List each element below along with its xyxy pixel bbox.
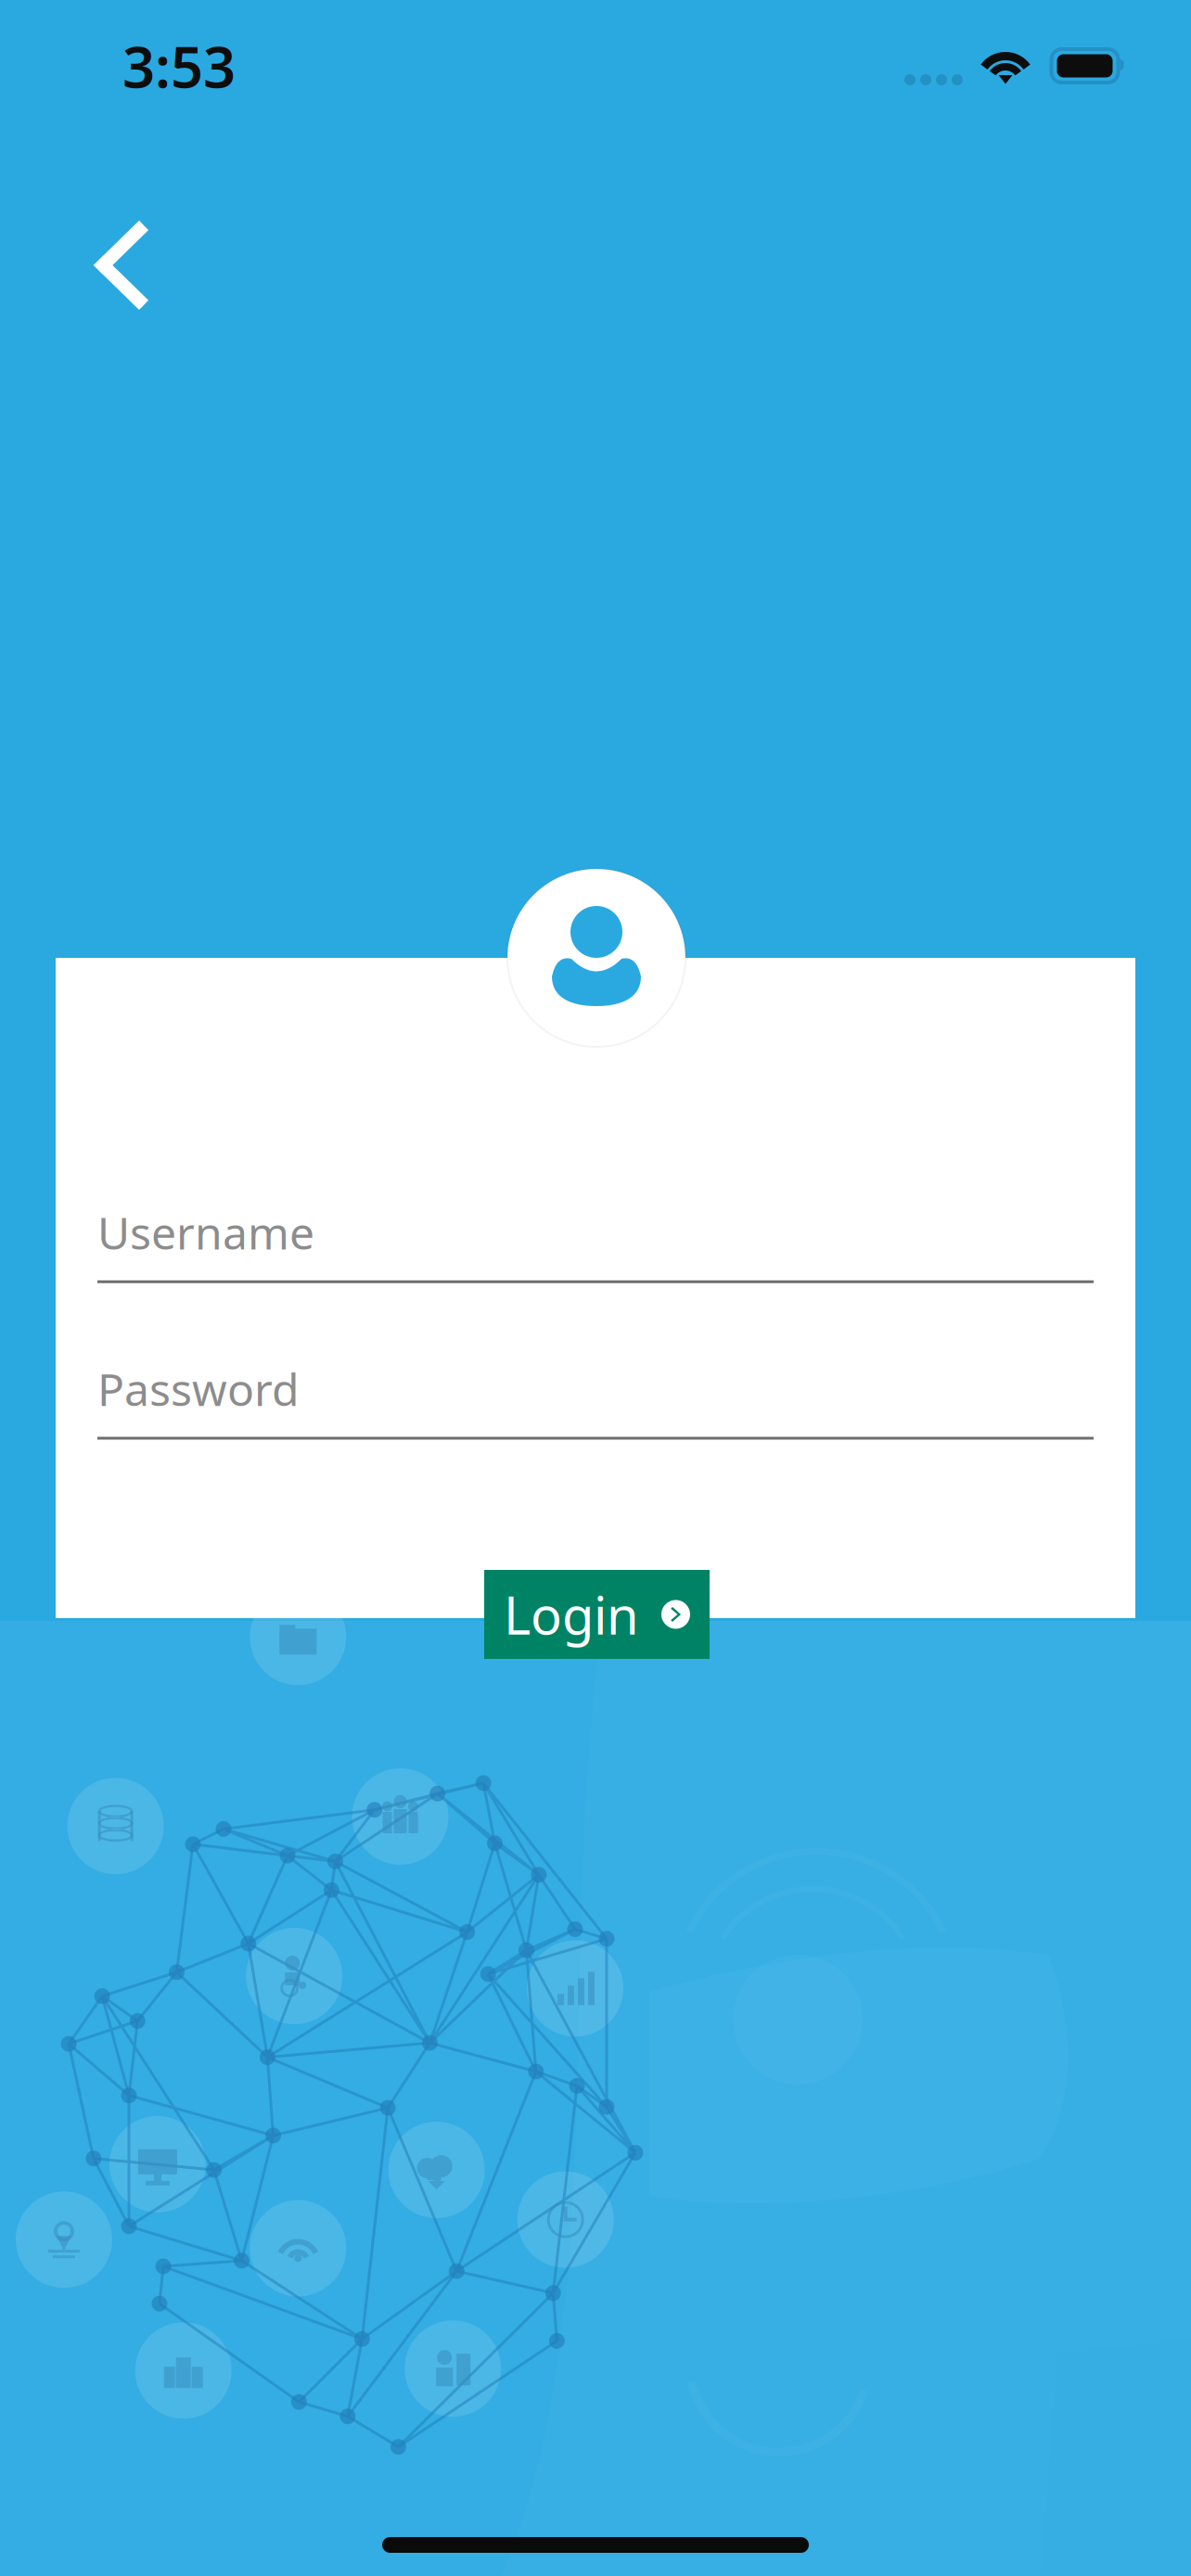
- staticText: 3:53: [122, 28, 236, 104]
- staticText: Username: [97, 1203, 314, 1262]
- button[interactable]: Login: [484, 1570, 710, 1659]
- button[interactable]: Back: [0, 132, 197, 349]
- staticText: Password: [97, 1359, 300, 1418]
- staticText: Login: [504, 1580, 639, 1649]
